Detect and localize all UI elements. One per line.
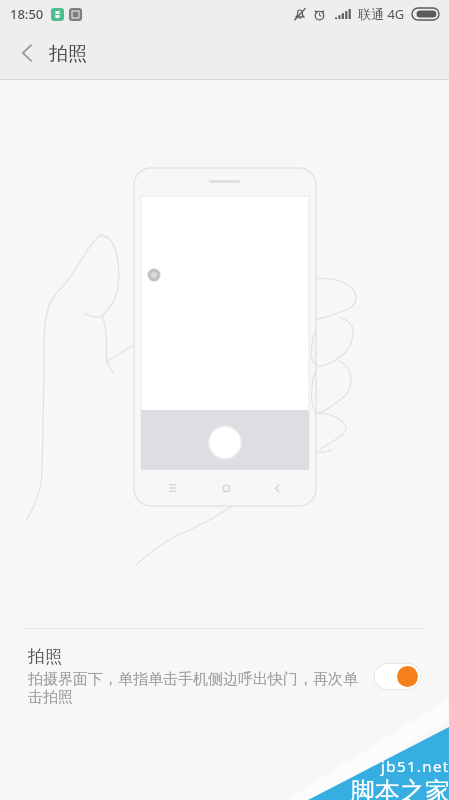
button[interactable]: Back	[0, 28, 49, 79]
staticText: 拍照	[49, 42, 87, 66]
staticText: 脚本之家	[350, 776, 449, 800]
staticText: 联通 4G	[358, 5, 405, 23]
staticText: jb51.net	[381, 756, 449, 776]
button[interactable]: Toggle 拍照	[374, 663, 421, 690]
staticText: 拍摄界面下，单指单击手机侧边呼出快门，再次单击拍照	[28, 670, 364, 707]
button[interactable]: 拍照	[0, 629, 449, 707]
staticText: 18:50	[10, 5, 44, 23]
staticText: 拍照	[28, 646, 62, 667]
